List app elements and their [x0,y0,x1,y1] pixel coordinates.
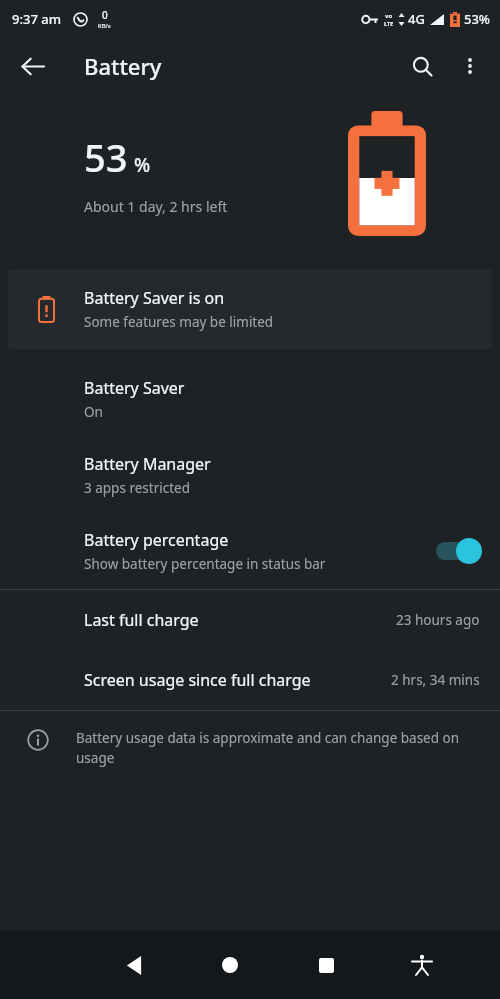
staticText: Battery percentage [84,529,229,551]
button[interactable]: Home [202,937,258,993]
button[interactable]: Last full charge [0,590,500,650]
staticText: Some features may be limited [84,313,274,331]
button[interactable]: Recent apps [298,937,354,993]
staticText: Last full charge [84,609,199,631]
staticText: 0 [102,8,108,22]
staticText: 53% [464,10,490,28]
staticText: About 1 day, 2 hrs left [84,197,228,216]
staticText: Show battery percentage in status bar [84,555,326,573]
button[interactable]: Battery percentage [0,513,500,589]
staticText: Battery [84,51,162,81]
button[interactable]: Battery Saver is on [8,269,492,349]
button[interactable]: More options [446,42,494,90]
staticText: vo [385,12,393,20]
staticText: Battery usage data is approximate and ca… [76,729,470,767]
staticText: KB/s [98,22,111,30]
button[interactable]: Search [398,42,446,90]
staticText: Battery Saver [84,377,185,399]
button[interactable]: Back [8,42,56,90]
button[interactable]: Accessibility [394,937,450,993]
staticText: 3 apps restricted [84,479,190,497]
staticText: 4G [408,10,425,28]
staticText: LTE [384,20,394,27]
button[interactable]: Battery Saver [0,361,500,437]
staticText: % [134,152,151,178]
staticText: Battery Saver is on [84,287,225,309]
staticText: 9:37 am [12,10,61,28]
staticText: On [84,403,103,421]
button[interactable]: Battery Manager [0,437,500,513]
staticText: 23 hours ago [396,611,480,629]
staticText: 2 hrs, 34 mins [391,671,480,689]
staticText: 53 [84,131,128,183]
button[interactable]: Back [106,937,162,993]
staticText: Battery Manager [84,453,211,475]
staticText: Screen usage since full charge [84,669,311,691]
button[interactable]: Screen usage since full charge [0,650,500,710]
